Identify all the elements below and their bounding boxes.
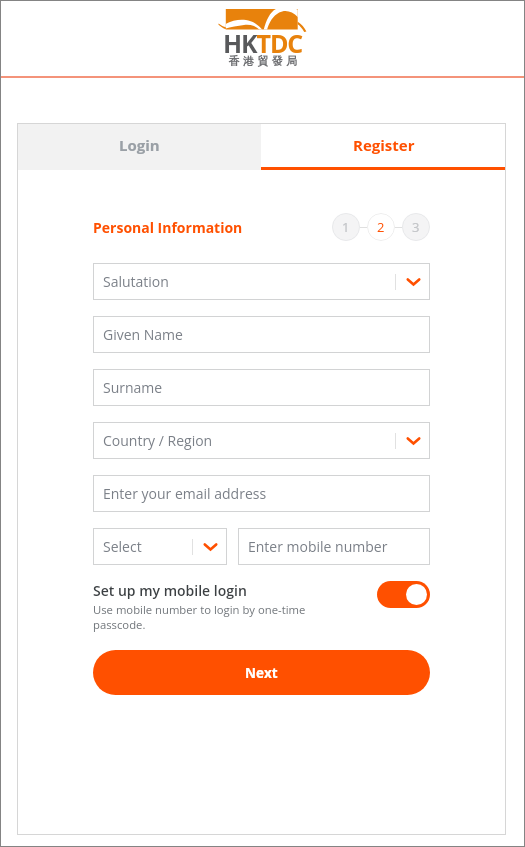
staticText: Register — [353, 135, 415, 155]
button[interactable]: Enter mobile number — [238, 528, 430, 565]
button[interactable]: Login — [17, 123, 261, 170]
staticText: Personal Information — [93, 218, 243, 237]
staticText: Login — [119, 135, 160, 155]
button[interactable]: Salutation — [93, 263, 430, 300]
staticText: 香港貿發局 — [227, 54, 299, 68]
staticText: 2 — [377, 218, 385, 236]
staticText: Country / Region — [103, 431, 213, 450]
staticText: Enter your email address — [103, 484, 267, 503]
staticText: 1 — [342, 218, 350, 236]
staticText: Next — [245, 664, 278, 682]
button[interactable]: Country / Region — [93, 422, 430, 459]
staticText: Enter mobile number — [248, 537, 388, 556]
staticText: Surname — [103, 378, 163, 397]
staticText: 3 — [412, 218, 420, 236]
button[interactable]: Step 3 — [402, 213, 430, 241]
staticText: Use mobile number to login by one-time p… — [93, 602, 315, 632]
staticText: Salutation — [103, 272, 169, 291]
button[interactable]: Next — [93, 650, 430, 695]
button[interactable]: Enter your email address — [93, 475, 430, 512]
button[interactable]: Surname — [93, 369, 430, 406]
staticText: Select — [103, 537, 142, 556]
staticText: HKTDC — [223, 26, 303, 60]
button[interactable]: Register — [261, 123, 506, 170]
button[interactable]: Step 1 — [332, 213, 360, 241]
button[interactable]: Step 2 — [367, 213, 395, 241]
staticText: Set up my mobile login — [93, 581, 247, 600]
button[interactable]: Select — [93, 528, 227, 565]
button[interactable]: Given Name — [93, 316, 430, 353]
staticText: Given Name — [103, 325, 183, 344]
button[interactable]: Set up my mobile login toggle — [377, 581, 430, 608]
